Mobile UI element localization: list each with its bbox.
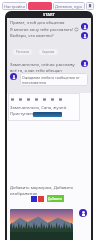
staticText: Я многое хочу тебе рассказать! 😊 <box>10 27 79 33</box>
staticText: Настройки <box>4 4 25 9</box>
staticText: Замечательно, сейчас расскажу <box>10 62 75 68</box>
button[interactable]: Рассказы <box>13 49 32 55</box>
button[interactable]: Attach <box>58 97 62 101</box>
staticText: Замечательно, Сана, жучей. Приступаем <box>10 105 82 117</box>
button[interactable]: Profile 3 <box>81 60 88 67</box>
button[interactable]: Active tab <box>28 2 52 10</box>
button[interactable]: Bookmark <box>86 2 94 10</box>
button[interactable]: Italic <box>18 97 22 101</box>
button[interactable]: Bot avatar <box>10 73 17 80</box>
staticText: Рассказы <box>16 50 30 54</box>
button[interactable]: Добавить <box>47 195 64 202</box>
button[interactable]: Задания <box>39 49 58 55</box>
button[interactable]: Profile 1 <box>81 23 88 30</box>
staticText: Выбери, что именно? <box>10 33 54 39</box>
staticText: Добавить <box>48 197 63 201</box>
button[interactable]: Landscape photo <box>10 209 73 240</box>
button[interactable]: Profile 2 <box>81 32 88 39</box>
staticText: Задания <box>42 50 55 54</box>
button[interactable]: Bold <box>10 97 14 101</box>
staticText: START <box>43 12 55 17</box>
button[interactable]: Profile 4 <box>79 209 87 217</box>
button[interactable]: Underline <box>26 97 30 101</box>
staticText: пользователя <box>22 80 47 85</box>
button[interactable]: Link <box>34 97 38 101</box>
staticText: Дневник, курс <box>55 4 83 9</box>
staticText: Добавить маркером, Добавить изображение <box>10 185 93 197</box>
button[interactable]: List <box>50 97 54 101</box>
button[interactable]: Настройки <box>2 2 27 10</box>
staticText: всё то, я как тебя обещал <box>10 68 62 74</box>
staticText: Ожидание любого сообщения от <box>22 75 80 80</box>
button[interactable]: Send <box>33 112 62 117</box>
staticText: Привет, чтоб для общения <box>10 20 65 26</box>
button[interactable]: Tag <box>42 97 46 101</box>
button[interactable]: Ожидание любого сообщения от <box>20 73 88 86</box>
button[interactable]: Дневник, курс <box>53 2 85 10</box>
